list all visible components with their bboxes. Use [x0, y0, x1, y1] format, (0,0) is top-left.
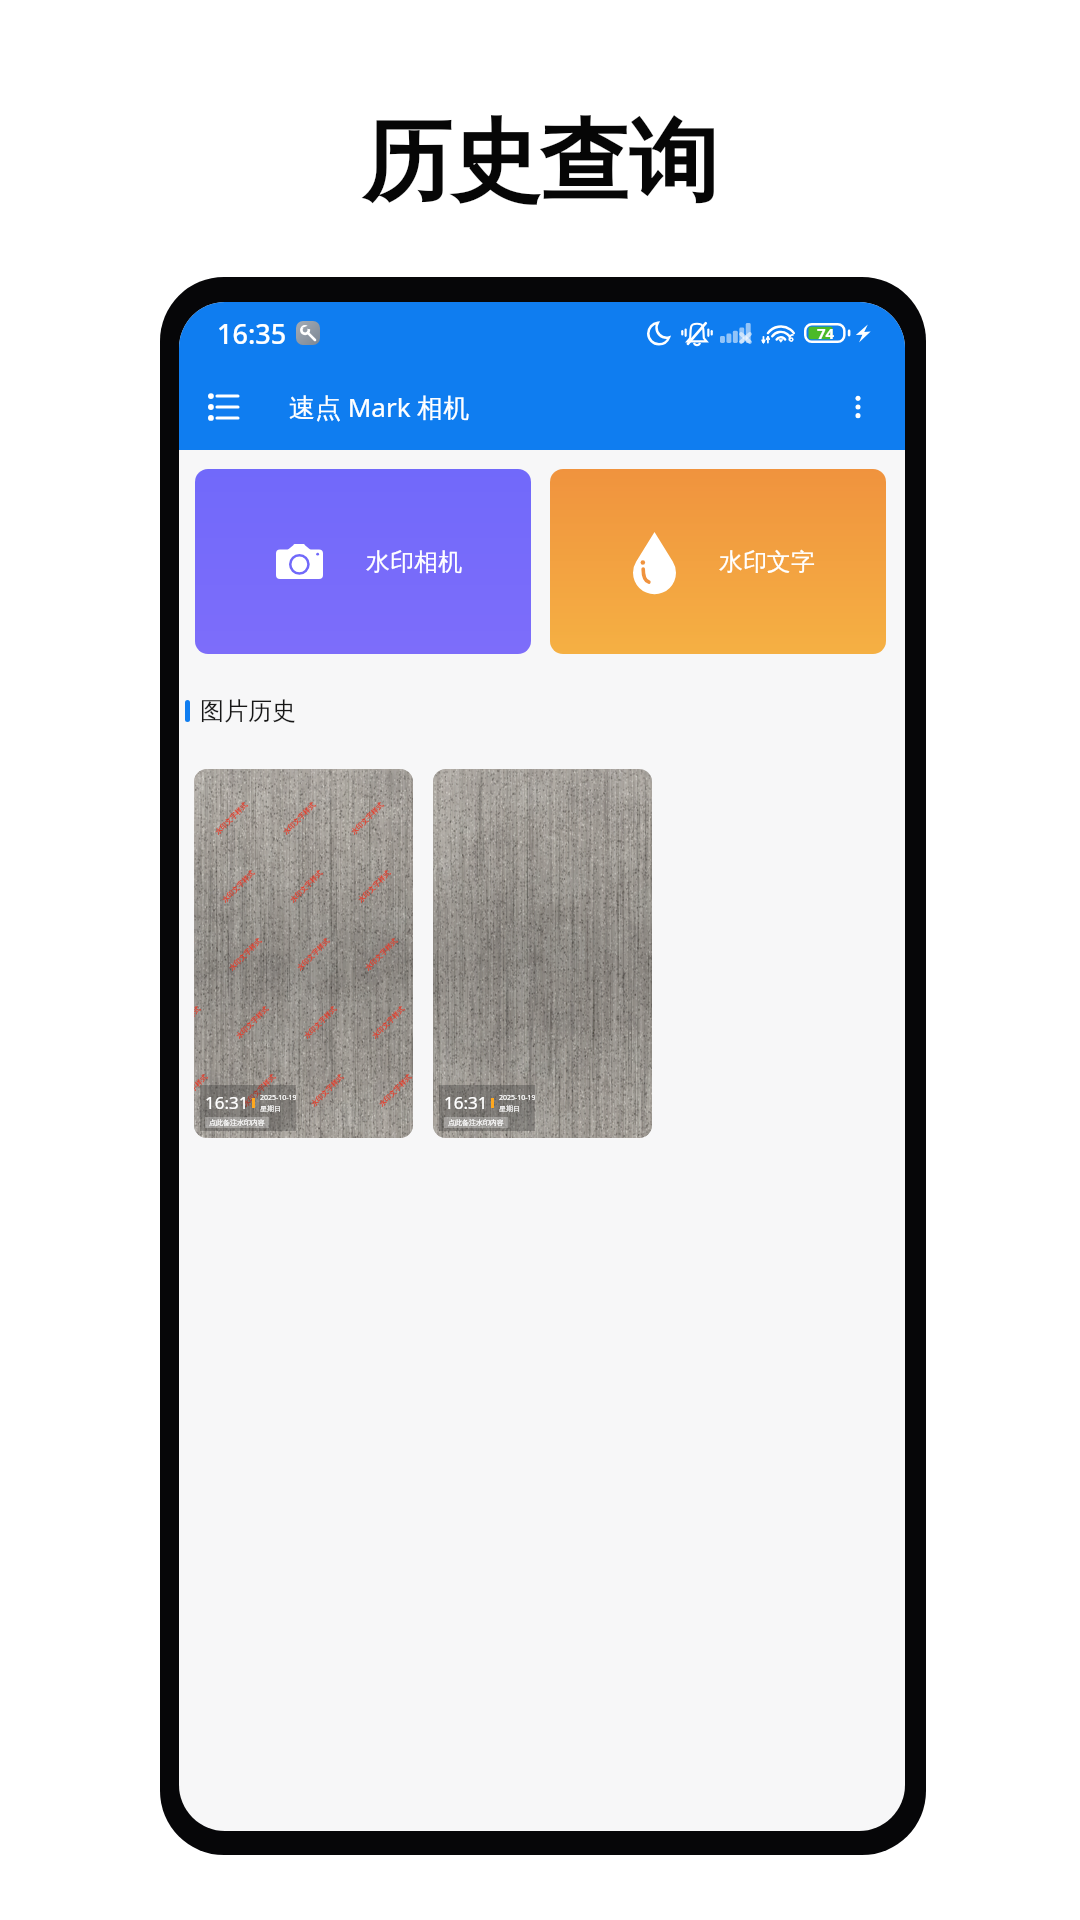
staticText: 水印文字样式 — [288, 868, 324, 905]
staticText: 水印文字样式 — [356, 868, 392, 905]
staticText: 水印文字样式 — [363, 936, 399, 973]
staticText: 点此备注水印内容 — [448, 1118, 504, 1127]
button[interactable]: Menu — [199, 383, 247, 431]
staticText: 水印文字样式 — [194, 936, 195, 973]
staticText: 水印相机 — [366, 547, 462, 577]
staticText: 16:31 — [444, 1091, 488, 1114]
button[interactable]: Watermarked photo 16:31 — [433, 769, 652, 1138]
staticText: 水印文字样式 — [241, 1072, 277, 1109]
staticText: 水印文字样式 — [377, 1072, 413, 1109]
staticText: 水印文字样式 — [227, 936, 263, 973]
staticText: 水印文字样式 — [281, 800, 317, 837]
staticText: 历史查询 — [362, 106, 718, 218]
staticText: 16:35 — [217, 315, 287, 352]
staticText: 水印文字 — [719, 547, 815, 577]
button[interactable]: 水印文字 — [550, 469, 886, 654]
staticText: 2025-10-19 — [499, 1093, 535, 1103]
button[interactable]: Watermarked photo 16:31 — [194, 769, 413, 1138]
staticText: 2025-10-19 — [260, 1093, 296, 1103]
staticText: 速点 Mark 相机 — [289, 389, 470, 425]
staticText: 星期日 — [499, 1104, 520, 1113]
staticText: 水印文字样式 — [370, 1004, 406, 1041]
staticText: 水印文字样式 — [234, 1004, 270, 1041]
staticText: 水印文字样式 — [194, 1072, 209, 1109]
staticText: 16:31 — [205, 1091, 249, 1114]
staticText: 水印文字样式 — [220, 868, 256, 905]
staticText: 74 — [817, 323, 835, 343]
staticText: 点此备注水印内容 — [209, 1118, 265, 1127]
button[interactable]: 水印相机 — [195, 469, 531, 654]
staticText: 水印文字样式 — [302, 1004, 338, 1041]
staticText: 水印文字样式 — [194, 1004, 202, 1041]
staticText: 水印文字样式 — [295, 936, 331, 973]
staticText: 星期日 — [260, 1104, 281, 1113]
button[interactable]: More options — [834, 383, 882, 431]
staticText: 水印文字样式 — [309, 1072, 345, 1109]
staticText: 图片历史 — [200, 696, 296, 726]
staticText: 水印文字样式 — [213, 800, 249, 837]
staticText: 水印文字样式 — [349, 800, 385, 837]
